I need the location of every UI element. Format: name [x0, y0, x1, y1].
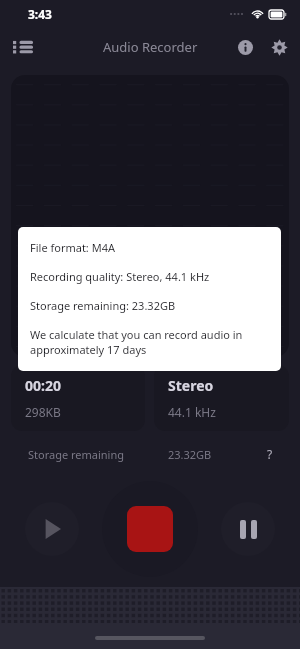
button[interactable]: Info: [228, 30, 262, 64]
staticText: Storage remaining: 23.32GB: [30, 298, 176, 313]
staticText: We calculate that you can record audio i…: [30, 327, 269, 357]
button[interactable]: 00:20: [11, 365, 145, 431]
staticText: Audio Recorder: [103, 38, 198, 56]
button[interactable]: Stereo: [154, 365, 289, 431]
button[interactable]: Play: [25, 502, 79, 556]
staticText: 3:43: [28, 6, 52, 22]
staticText: ?: [267, 446, 273, 462]
button[interactable]: Recordings list: [4, 28, 42, 66]
button[interactable]: File format: M4A: [18, 227, 281, 371]
staticText: File format: M4A: [30, 240, 115, 255]
button[interactable]: Storage help: [258, 442, 282, 466]
staticText: 298KB: [25, 404, 61, 420]
button[interactable]: Stop recording: [102, 481, 198, 577]
staticText: 00:20: [25, 376, 61, 395]
staticText: 23.32GB: [168, 447, 212, 462]
staticText: Stereo: [168, 376, 214, 395]
staticText: Storage remaining: [28, 447, 125, 462]
button[interactable]: [11, 75, 289, 357]
staticText: 44.1 kHz: [168, 404, 216, 420]
button[interactable]: Settings: [262, 30, 296, 64]
staticText: Recording quality: Stereo, 44.1 kHz: [30, 269, 210, 284]
button[interactable]: Pause: [221, 502, 275, 556]
